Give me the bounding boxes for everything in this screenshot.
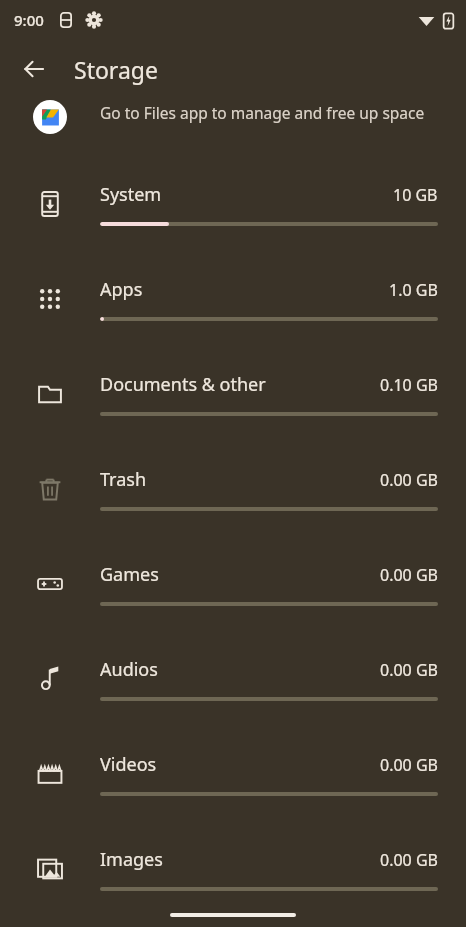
- staticText: 0.10 GB: [380, 374, 438, 396]
- staticText: Documents & other: [100, 372, 266, 397]
- staticText: 9:00: [14, 10, 44, 30]
- staticText: Videos: [100, 752, 157, 777]
- button[interactable]: Go to Files app to manage and free up sp…: [0, 98, 466, 156]
- staticText: Go to Files app to manage and free up sp…: [100, 102, 425, 123]
- staticText: 0.00 GB: [380, 469, 438, 491]
- button[interactable]: Back: [10, 45, 58, 93]
- staticText: Storage: [74, 54, 158, 85]
- button[interactable]: System: [0, 156, 466, 251]
- staticText: 1.0 GB: [389, 279, 438, 301]
- button[interactable]: Videos: [0, 726, 466, 821]
- staticText: 0.00 GB: [380, 754, 438, 776]
- staticText: 0.00 GB: [380, 564, 438, 586]
- staticText: Audios: [100, 657, 158, 682]
- staticText: 0.00 GB: [380, 849, 438, 871]
- button[interactable]: Games: [0, 536, 466, 631]
- staticText: Images: [100, 847, 163, 872]
- button[interactable]: Apps: [0, 251, 466, 346]
- staticText: Trash: [100, 467, 147, 492]
- button[interactable]: Documents & other: [0, 346, 466, 441]
- button[interactable]: Images: [0, 821, 466, 916]
- staticText: Games: [100, 562, 159, 587]
- staticText: 10 GB: [393, 184, 438, 206]
- staticText: 0.00 GB: [380, 659, 438, 681]
- staticText: System: [100, 182, 162, 207]
- staticText: Apps: [100, 277, 143, 302]
- button[interactable]: Trash: [0, 441, 466, 536]
- button[interactable]: Audios: [0, 631, 466, 726]
